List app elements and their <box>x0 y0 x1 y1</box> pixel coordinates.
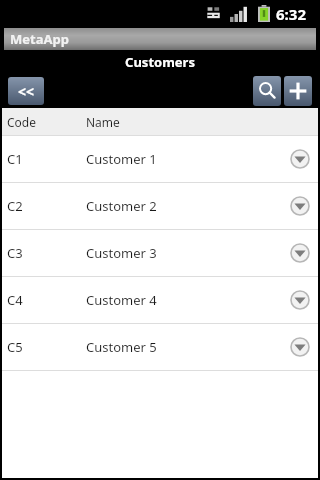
button[interactable]: C2 <box>2 183 318 229</box>
staticText: Code <box>7 114 36 130</box>
staticText: << <box>18 82 35 101</box>
staticText: C5 <box>7 338 23 356</box>
staticText: Customer 5 <box>86 338 157 356</box>
button[interactable]: C1 <box>2 136 318 182</box>
button[interactable]: Options <box>290 337 310 357</box>
staticText: Customer 3 <box>86 244 157 262</box>
staticText: 6:32 <box>276 4 306 24</box>
button[interactable]: Back <box>8 77 44 105</box>
button[interactable]: Options <box>290 149 310 169</box>
button[interactable]: Search <box>253 76 281 106</box>
staticText: MetaApp <box>10 30 69 48</box>
staticText: Name <box>86 114 120 130</box>
button[interactable]: C5 <box>2 324 318 370</box>
staticText: C1 <box>7 150 23 168</box>
staticText: Customer 1 <box>86 150 157 168</box>
staticText: C2 <box>7 197 23 215</box>
staticText: C4 <box>7 291 23 309</box>
staticText: C3 <box>7 244 23 262</box>
button[interactable]: Options <box>290 290 310 310</box>
button[interactable]: Options <box>290 243 310 263</box>
button[interactable]: Options <box>290 196 310 216</box>
button[interactable]: Add <box>284 76 312 106</box>
button[interactable]: C4 <box>2 277 318 323</box>
button[interactable]: C3 <box>2 230 318 276</box>
staticText: Customers <box>125 53 195 71</box>
staticText: Customer 2 <box>86 197 157 215</box>
staticText: Customer 4 <box>86 291 157 309</box>
